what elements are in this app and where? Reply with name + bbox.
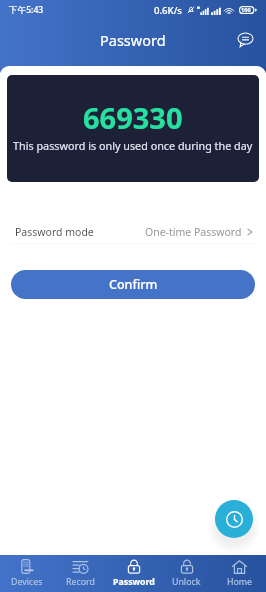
staticText: Password mode (15, 225, 94, 239)
button[interactable]: Devices (0, 555, 54, 592)
button[interactable]: Password mode (0, 217, 266, 247)
button[interactable]: History (215, 500, 253, 538)
staticText: Confirm (109, 276, 158, 293)
staticText: 100 (241, 6, 251, 14)
button[interactable]: Unlock (160, 555, 213, 592)
button[interactable]: Messages (230, 25, 260, 55)
button[interactable]: Password (107, 555, 160, 592)
staticText: 0.6K/s (154, 4, 183, 17)
staticText: Unlock (172, 576, 201, 588)
staticText: Devices (11, 576, 43, 588)
staticText: Home (227, 576, 253, 588)
staticText: This password is only used once during t… (13, 138, 253, 153)
button[interactable]: Home (213, 555, 266, 592)
staticText: 669330 (83, 98, 183, 137)
staticText: Record (66, 576, 95, 588)
staticText: Password (100, 30, 166, 50)
staticText: Password (113, 576, 155, 588)
staticText: One-time Password (145, 225, 242, 239)
staticText: 下午5:43 (9, 4, 44, 16)
button[interactable]: Confirm (11, 270, 255, 299)
button[interactable]: Record (54, 555, 107, 592)
